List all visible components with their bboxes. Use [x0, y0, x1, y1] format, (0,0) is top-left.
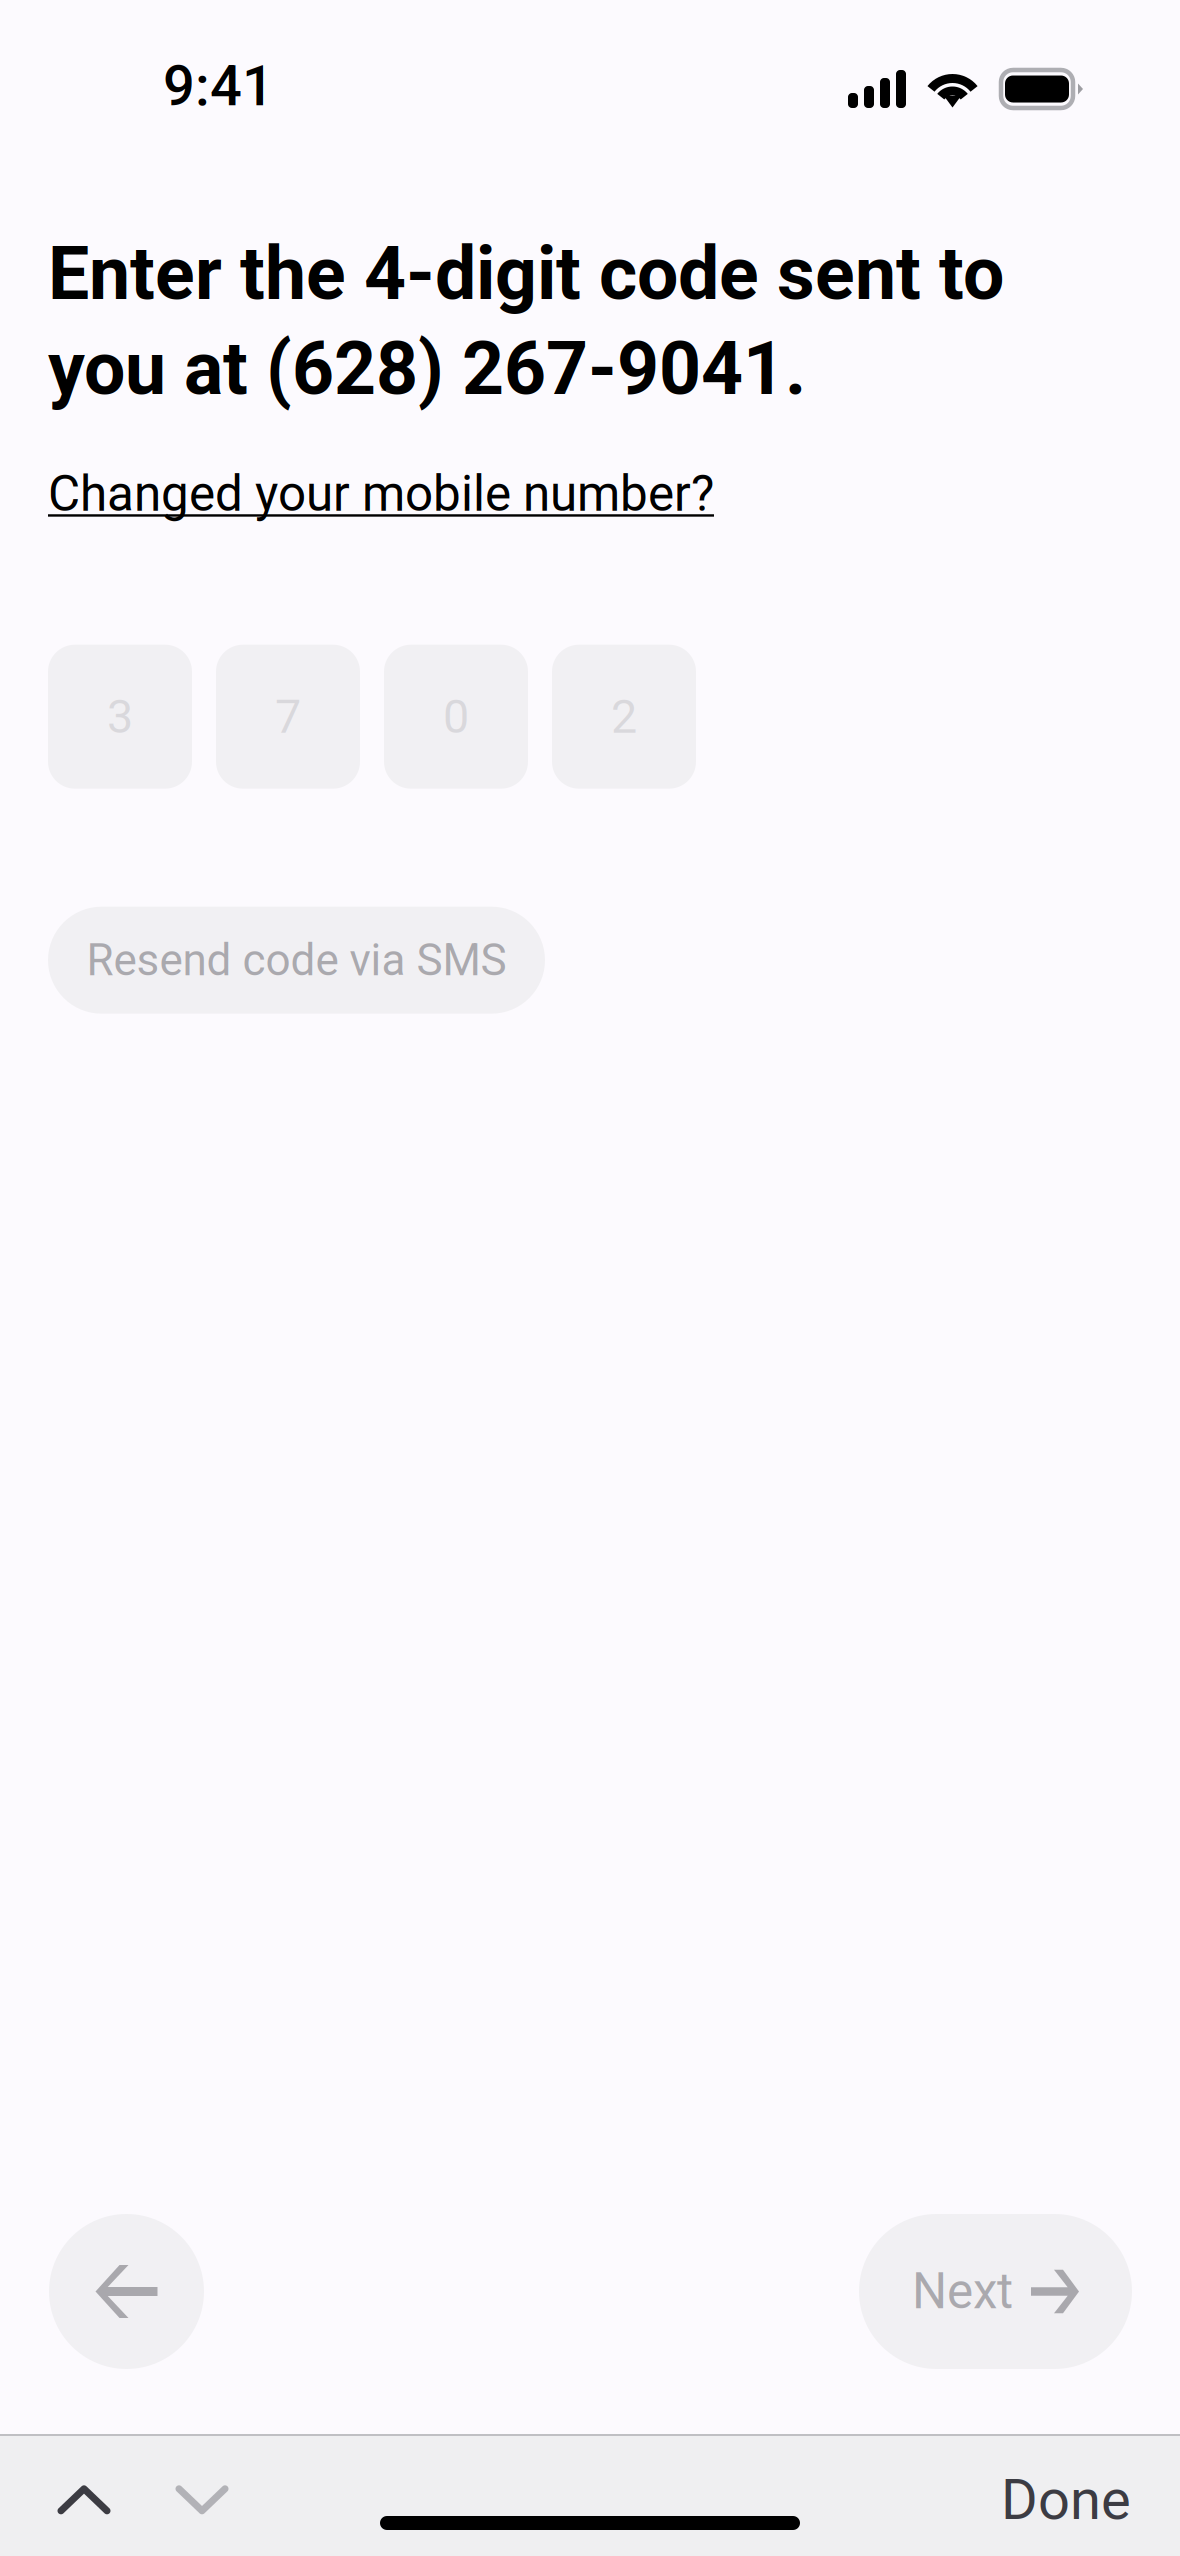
- button[interactable]: Back: [49, 2214, 204, 2369]
- staticText: 9:41: [163, 53, 274, 119]
- button[interactable]: Resend code via SMS: [48, 907, 545, 1014]
- staticText: 3: [107, 689, 133, 744]
- button[interactable]: Next field: [140, 2460, 258, 2540]
- button[interactable]: Next: [859, 2214, 1132, 2369]
- staticText: 2: [611, 689, 637, 744]
- staticText: Enter the 4-digit code sent to: [48, 231, 1004, 317]
- staticText: Done: [1001, 2467, 1131, 2533]
- staticText: Next: [912, 2263, 1013, 2320]
- staticText: you at (628) 267-9041.: [48, 326, 806, 412]
- button[interactable]: Previous field: [28, 2460, 140, 2540]
- staticText: Resend code via SMS: [86, 934, 506, 986]
- staticText: 0: [443, 689, 469, 744]
- staticText: 7: [275, 689, 301, 744]
- staticText: Changed your mobile number?: [48, 465, 714, 523]
- button[interactable]: Done: [977, 2447, 1155, 2553]
- button[interactable]: Changed your mobile number?: [48, 412, 714, 523]
